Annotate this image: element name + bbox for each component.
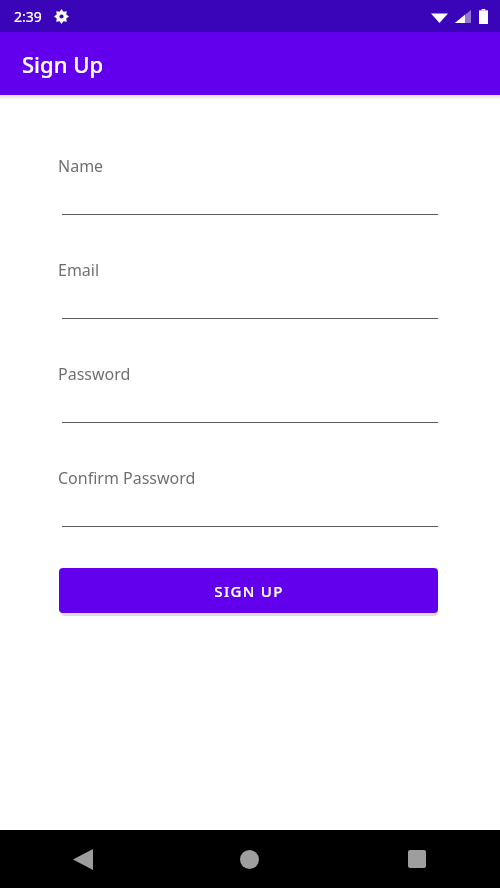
button[interactable]: Back bbox=[0, 830, 166, 888]
button[interactable]: Email bbox=[58, 259, 438, 319]
button[interactable]: Recent apps bbox=[333, 830, 500, 888]
staticText: Name bbox=[58, 155, 104, 177]
button[interactable]: Home bbox=[166, 830, 333, 888]
button[interactable]: Name bbox=[58, 155, 438, 215]
staticText: SIGN UP bbox=[214, 581, 284, 601]
staticText: Email bbox=[58, 259, 100, 281]
button[interactable]: SIGN UP bbox=[59, 568, 438, 613]
staticText: Sign Up bbox=[22, 49, 104, 79]
staticText: 2:39 bbox=[14, 7, 42, 26]
button[interactable]: Password bbox=[58, 363, 438, 423]
button[interactable]: Confirm Password bbox=[58, 467, 438, 527]
staticText: Confirm Password bbox=[58, 467, 196, 489]
staticText: Password bbox=[58, 363, 131, 385]
